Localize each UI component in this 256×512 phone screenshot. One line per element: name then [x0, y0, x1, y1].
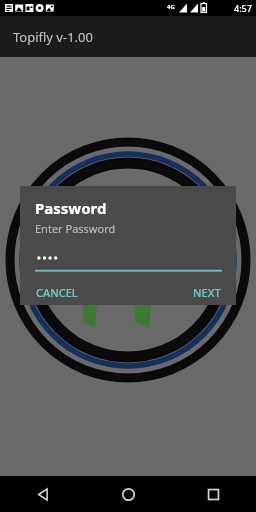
staticText: Password — [35, 198, 107, 218]
button[interactable] — [35, 249, 222, 272]
staticText: 4:57 — [234, 2, 252, 14]
button[interactable]: Home — [86, 476, 171, 512]
button[interactable]: Recent apps — [171, 476, 256, 512]
button[interactable]: Back — [0, 476, 86, 512]
button[interactable]: CANCEL — [33, 281, 81, 304]
staticText: 4G — [167, 3, 175, 11]
staticText: NEXT — [193, 285, 221, 300]
staticText: CANCEL — [36, 285, 78, 300]
staticText: Topifly v-1.00 — [13, 28, 93, 46]
staticText: Enter Password — [35, 221, 116, 236]
button[interactable]: NEXT — [190, 281, 224, 304]
